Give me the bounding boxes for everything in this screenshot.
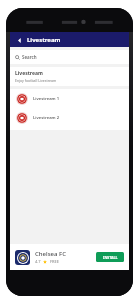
staticText: FREE — [50, 259, 60, 264]
staticText: Livestream 2 — [33, 115, 60, 121]
button[interactable]: Livestream 2 — [10, 108, 129, 127]
button[interactable]: Search — [10, 50, 129, 64]
button[interactable]: Back — [14, 35, 24, 45]
staticText: Livestream 1 — [33, 96, 60, 102]
staticText: INSTALL — [103, 255, 118, 260]
staticText: Livestream — [15, 70, 43, 77]
staticText: Search — [22, 54, 37, 60]
button[interactable]: INSTALL — [96, 252, 124, 262]
staticText: Chelsea FC — [35, 250, 66, 258]
staticText: Livestream — [27, 36, 61, 44]
staticText: 4.7 — [35, 259, 41, 264]
staticText: Enjoy football Livestream — [15, 78, 57, 83]
button[interactable]: Livestream 1 — [10, 89, 129, 108]
